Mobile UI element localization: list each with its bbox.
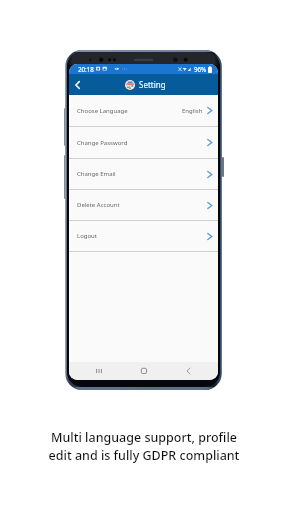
staticText: Logout: [77, 232, 97, 240]
button[interactable]: Back: [166, 362, 211, 380]
staticText: Setting: [139, 79, 166, 90]
button[interactable]: Logout: [69, 221, 218, 251]
button[interactable]: Back: [70, 78, 84, 92]
button[interactable]: Change Email: [69, 159, 218, 189]
button[interactable]: Change Password: [69, 127, 218, 158]
button[interactable]: Recent apps: [76, 362, 121, 380]
button[interactable]: Delete Account: [69, 190, 218, 220]
staticText: Change Password: [77, 139, 128, 147]
button[interactable]: Choose Language: [69, 95, 218, 126]
staticText: 96%: [194, 65, 207, 73]
staticText: Delete Account: [77, 201, 120, 209]
staticText: English: [182, 107, 203, 115]
staticText: Choose Language: [77, 107, 128, 115]
button[interactable]: Home: [121, 362, 166, 380]
staticText: Multi language support, profile edit and…: [0, 429, 288, 464]
staticText: 20:18: [78, 65, 94, 73]
staticText: Change Email: [77, 170, 116, 178]
